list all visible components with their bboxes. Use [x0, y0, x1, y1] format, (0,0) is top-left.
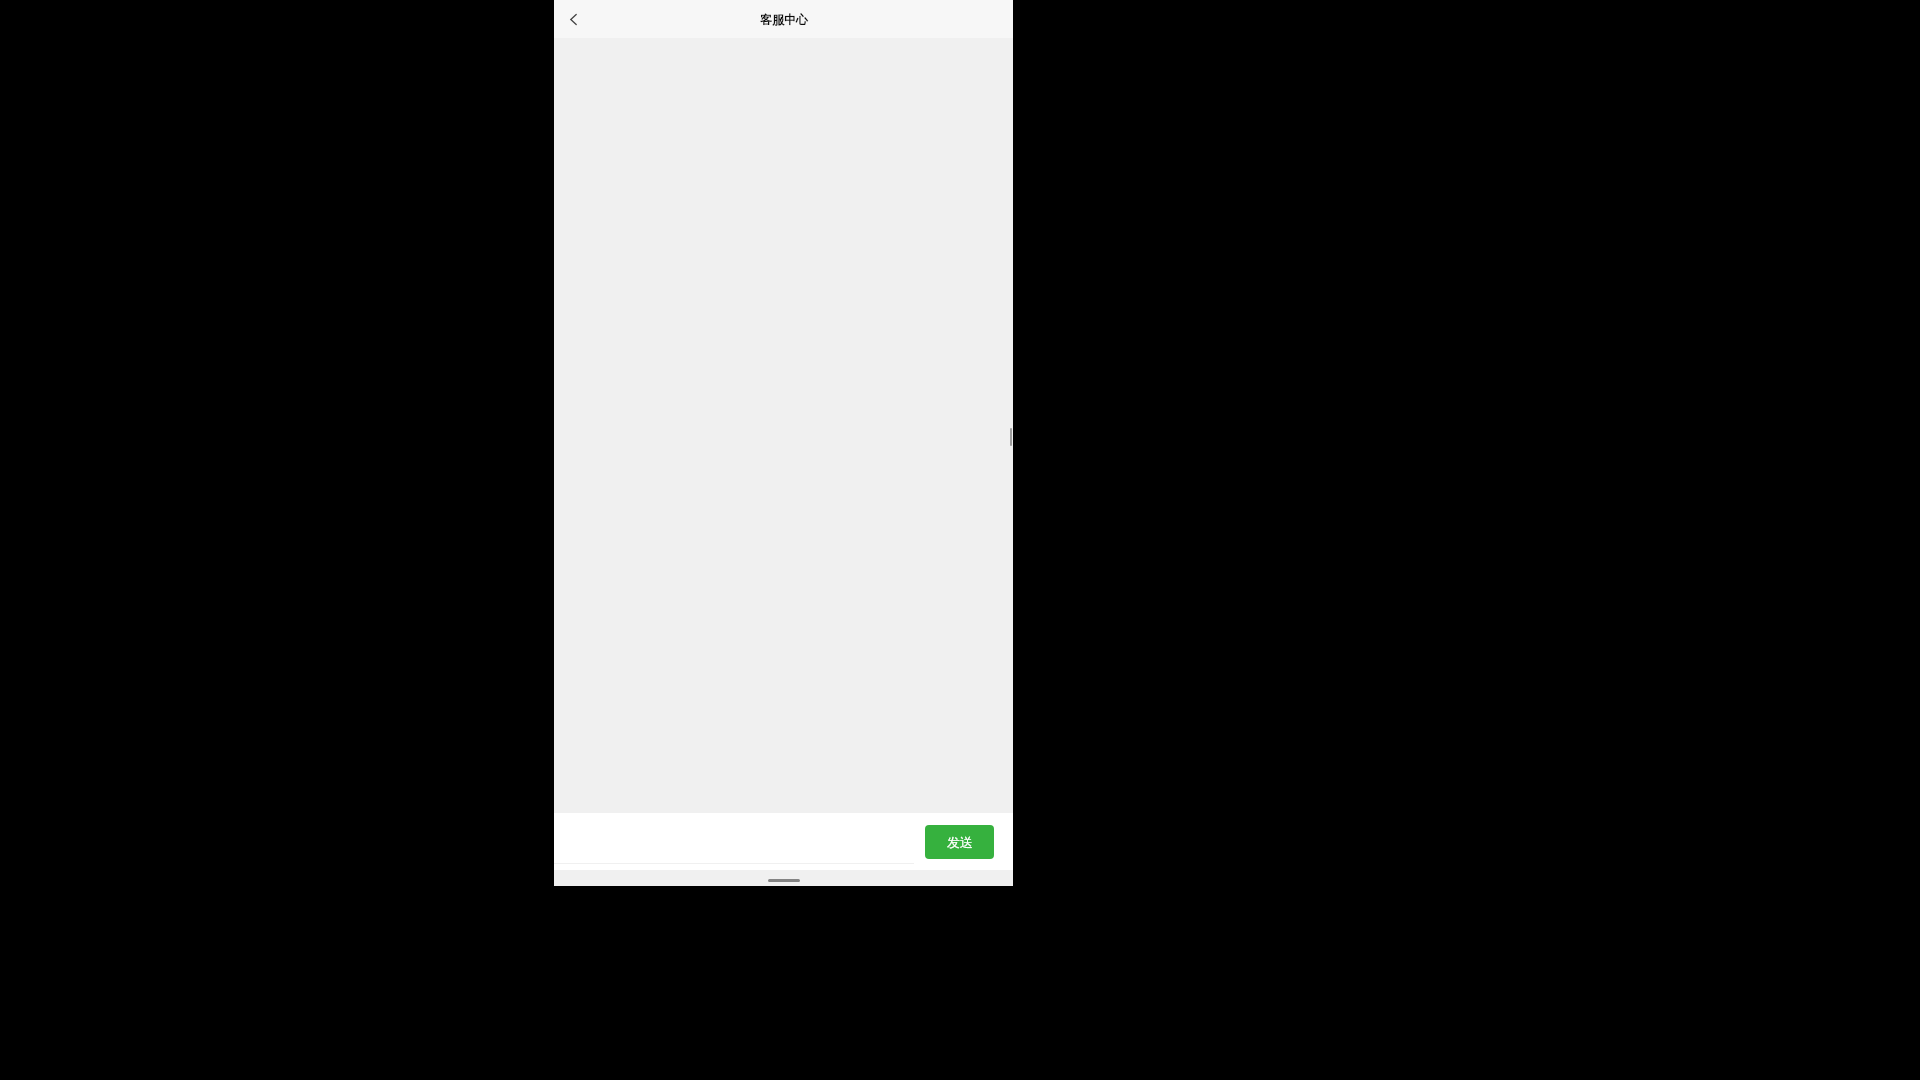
staticText: 客服中心: [760, 12, 808, 27]
button[interactable]: Back: [557, 3, 589, 35]
button[interactable]: 发送: [925, 825, 994, 859]
staticText: 发送: [947, 834, 973, 850]
